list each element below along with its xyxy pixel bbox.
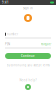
staticText: By continuing you accept Terms — [6, 63, 49, 67]
staticText: PIN — [5, 42, 10, 46]
button[interactable]: Chat with support — [25, 84, 31, 90]
staticText: 9:41 — [2, 1, 9, 4]
staticText: Forgot? — [41, 42, 51, 46]
button[interactable]: Forgot? — [41, 42, 51, 46]
staticText: number — [7, 32, 18, 36]
staticText: Continue — [21, 54, 35, 58]
button[interactable]: Continue — [5, 53, 51, 59]
staticText: Need help? — [19, 78, 36, 82]
staticText: Sign in — [23, 6, 33, 10]
